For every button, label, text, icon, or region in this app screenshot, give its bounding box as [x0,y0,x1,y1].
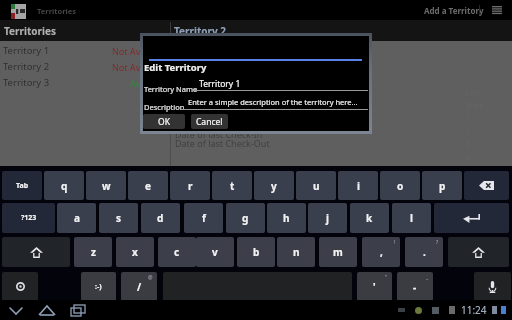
staticText: ' [373,280,376,294]
button[interactable]: y [254,171,294,200]
button[interactable]: b [237,237,275,267]
staticText: Enter a simple description of the territ… [188,97,358,107]
button[interactable]: t [212,171,252,200]
staticText: Territory 1 [199,78,241,90]
button[interactable]: Hide keyboard [6,300,26,320]
button[interactable]: ' [357,272,392,301]
staticText: Territory 3 [3,76,50,89]
button[interactable]: Cancel [191,114,228,129]
staticText: Territory 2 [3,60,50,73]
staticText: :-) [95,282,102,292]
button[interactable]: / [121,272,157,301]
button[interactable]: i [338,171,378,200]
button[interactable]: Add a Territory [418,0,490,20]
button[interactable]: Territory 2 [0,58,169,74]
button[interactable]: e [128,171,168,200]
button[interactable]: mic [474,272,511,301]
staticText: z [91,245,96,259]
staticText: h [283,211,290,225]
button[interactable]: l [392,203,431,233]
staticText: r [188,179,193,193]
button[interactable]: h [267,203,306,233]
staticText: , [380,245,383,259]
staticText: 11:24 [461,303,487,317]
button[interactable]: shift [2,237,70,267]
staticText: Date of last Check-Out [175,137,270,149]
staticText: c [174,245,180,259]
staticText: Territory 1 [3,44,50,57]
staticText: q [61,179,68,193]
staticText: ! [394,239,396,246]
button[interactable]: ?123 [2,203,55,233]
staticText: w [102,179,111,193]
button[interactable]: settings [2,272,38,301]
staticText: " [385,274,388,281]
button[interactable]: z [74,237,112,267]
staticText: m [333,245,343,259]
staticText: Available [130,77,168,89]
button[interactable]: Home [37,300,57,320]
button[interactable]: w [86,171,126,200]
staticText: Tab [16,181,29,191]
button[interactable]: k [350,203,389,233]
staticText: t [230,179,235,193]
button[interactable]: g [226,203,265,233]
button[interactable]: Recent apps [68,300,88,320]
button[interactable]: - [397,272,433,301]
button[interactable]: , [362,237,400,267]
button[interactable]: u [296,171,336,200]
button[interactable]: Territory 3 [0,74,169,90]
staticText: a [74,211,80,225]
staticText: s [116,211,122,225]
staticText: f [202,211,206,225]
staticText: Not Available [112,61,168,73]
button[interactable]: OK [143,114,185,129]
button[interactable]: c [158,237,196,267]
staticText: OK [158,116,170,128]
button[interactable]: f [184,203,223,233]
staticText: Territories [4,24,57,38]
staticText: n [293,245,300,259]
button[interactable]: d [141,203,180,233]
button[interactable]: s [99,203,138,233]
button[interactable]: Territory 1 [0,42,169,58]
button[interactable]: o [380,171,420,200]
staticText: - [413,280,417,294]
button[interactable]: :-) [81,272,116,301]
staticText: ? [436,239,439,246]
button[interactable]: x [116,237,154,267]
staticText: Territory 2 [174,24,227,38]
button[interactable]: a [57,203,96,233]
button[interactable]: r [170,171,210,200]
staticText: @ [148,274,153,281]
staticText: l [410,211,413,225]
staticText: k [366,211,373,225]
button[interactable]: v [196,237,234,267]
button[interactable]: m [319,237,357,267]
button[interactable]: space [163,272,352,301]
staticText: o [397,179,404,193]
button[interactable]: enter [434,203,509,233]
button[interactable]: More options [486,0,508,20]
button[interactable]: Tab [2,171,42,200]
staticText: v [212,245,218,259]
button[interactable]: q [44,171,84,200]
staticText: ?123 [21,213,37,223]
staticText: _ [426,274,429,281]
staticText: g [242,211,249,225]
button[interactable]: . [405,237,443,267]
button[interactable]: n [277,237,315,267]
staticText: y [271,179,277,193]
button[interactable]: j [308,203,347,233]
staticText: Not Available [112,45,168,57]
staticText: j [326,211,329,225]
button[interactable]: p [422,171,462,200]
staticText: Date of last Check-In [175,128,263,140]
staticText: e [145,179,151,193]
button[interactable]: back [464,171,509,200]
button[interactable]: shift [448,237,509,267]
